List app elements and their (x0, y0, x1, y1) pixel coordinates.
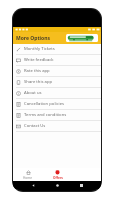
staticText: Rate this app (24, 68, 50, 74)
button[interactable]: Recents (77, 181, 85, 189)
staticText: Monthly Tickets (24, 46, 55, 52)
button[interactable]: Contact Us (13, 121, 101, 132)
staticText: Share this app (24, 79, 53, 85)
staticText: About us (24, 90, 42, 96)
staticText: Home (23, 176, 33, 180)
button[interactable]: Write feedback (13, 55, 101, 66)
button[interactable]: Offers (43, 168, 72, 181)
button[interactable]: Cancellation policies (13, 99, 101, 110)
staticText: More Options (16, 35, 50, 42)
button[interactable]: Share this app (13, 77, 101, 88)
button[interactable]: Monthly Tickets (13, 44, 101, 55)
button[interactable]: Rate this app (13, 66, 101, 77)
button[interactable]: Home (13, 168, 43, 181)
button[interactable]: Home (53, 181, 61, 189)
button[interactable]: Back (29, 181, 37, 189)
button[interactable]: Brand logo (66, 34, 98, 42)
staticText: Write feedback (24, 57, 54, 63)
staticText: Offers (53, 176, 63, 180)
staticText: Terms and conditions (24, 112, 67, 118)
button[interactable]: Terms and conditions (13, 110, 101, 121)
staticText: Cancellation policies (24, 101, 64, 107)
staticText: Contact Us (24, 123, 46, 129)
button[interactable]: About us (13, 88, 101, 99)
